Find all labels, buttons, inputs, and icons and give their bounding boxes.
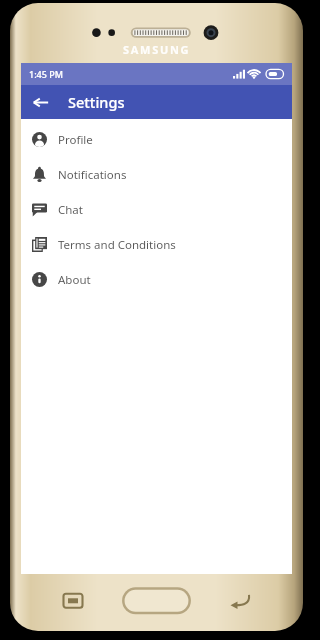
button[interactable]: Notifications [21,157,292,192]
button[interactable]: Back [25,87,55,117]
staticText: Profile [58,132,93,148]
staticText: Chat [58,202,83,218]
button[interactable]: Terms and Conditions [21,227,292,262]
staticText: 1:45 PM [29,68,63,80]
button[interactable]: Chat [21,192,292,227]
staticText: SAMSUNG [123,42,191,57]
button[interactable]: About [21,262,292,297]
button[interactable]: Profile [21,122,292,157]
staticText: Settings [68,92,125,112]
staticText: Notifications [58,167,127,183]
staticText: About [58,272,91,288]
staticText: Terms and Conditions [58,237,176,253]
